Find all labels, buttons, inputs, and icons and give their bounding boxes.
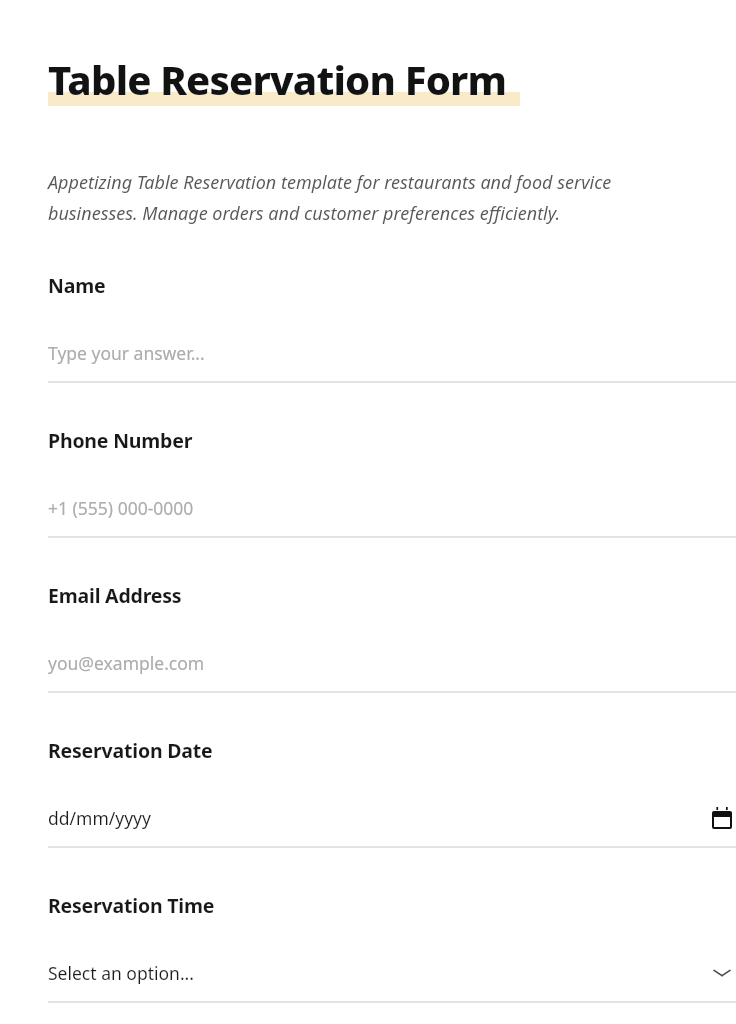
button[interactable]: Name [48,272,736,383]
button[interactable]: Phone Number [48,427,736,538]
button[interactable]: Open time options [708,960,736,986]
staticText: Select an option... [48,961,194,985]
button[interactable]: Reservation Date [48,737,736,848]
staticText: dd/mm/yyyy [48,806,151,830]
staticText: Table Reservation Form [48,52,507,106]
staticText: Name [48,272,106,299]
button[interactable]: Reservation Time [48,892,736,1003]
staticText: Appetizing Table Reservation template fo… [48,170,682,225]
button[interactable]: Email Address [48,582,736,693]
staticText: you@example.com [48,651,205,675]
button[interactable]: Open date picker [708,805,736,831]
staticText: Reservation Time [48,892,215,919]
staticText: Phone Number [48,427,193,454]
staticText: Reservation Date [48,737,213,764]
staticText: Type your answer... [48,341,205,365]
staticText: Email Address [48,582,182,609]
staticText: +1 (555) 000-0000 [48,496,194,520]
